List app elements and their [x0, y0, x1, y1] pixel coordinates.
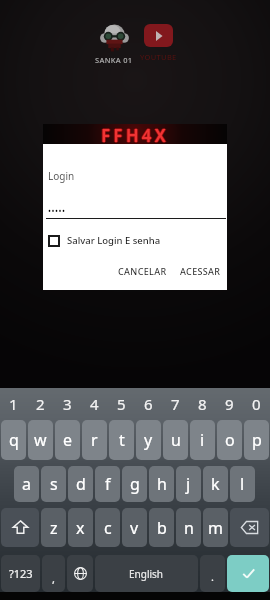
staticText: .	[211, 569, 214, 584]
staticText: 1	[9, 394, 18, 414]
staticText: i	[200, 429, 205, 451]
staticText: 8	[198, 394, 207, 414]
staticText: y	[144, 429, 153, 451]
staticText: w	[34, 429, 47, 451]
button[interactable]: 3	[54, 388, 81, 420]
button[interactable]: ACESSAR	[175, 261, 226, 281]
staticText: 3	[63, 394, 72, 414]
button[interactable]: l	[230, 466, 255, 502]
staticText: g	[130, 473, 140, 495]
button[interactable]: Backspace	[230, 508, 269, 547]
button[interactable]: d	[68, 466, 93, 502]
button[interactable]: 4	[81, 388, 108, 420]
staticText: m	[208, 517, 223, 539]
button[interactable]: YouTube	[133, 24, 183, 62]
button[interactable]: SANKA 01	[88, 24, 140, 65]
staticText: CANCELAR	[118, 265, 167, 277]
button[interactable]: t	[109, 420, 134, 460]
button[interactable]: CANCELAR	[113, 261, 172, 281]
button[interactable]: g	[122, 466, 147, 502]
button[interactable]: 1	[0, 388, 27, 420]
staticText: n	[184, 517, 194, 539]
button[interactable]: u	[163, 420, 188, 460]
staticText: FFH4X	[102, 124, 170, 144]
staticText: ACESSAR	[180, 265, 221, 277]
staticText: b	[157, 517, 167, 539]
staticText: Login	[48, 169, 75, 183]
button[interactable]: 5	[108, 388, 135, 420]
other: SANKA 01	[99, 24, 130, 52]
button[interactable]: s	[41, 466, 66, 502]
button[interactable]: a	[14, 466, 39, 502]
staticText: 5	[117, 394, 126, 414]
staticText: f	[105, 473, 111, 495]
staticText: v	[130, 517, 139, 539]
button[interactable]: 8	[189, 388, 216, 420]
button[interactable]: English	[95, 555, 198, 592]
staticText: ?123	[9, 566, 33, 581]
staticText: 6	[144, 394, 153, 414]
staticText: c	[104, 517, 112, 539]
button[interactable]: p	[244, 420, 269, 460]
button[interactable]: h	[149, 466, 174, 502]
staticText: 0	[252, 394, 261, 414]
staticText: FFH4X	[101, 125, 169, 145]
button[interactable]: 0	[243, 388, 270, 420]
staticText: 4	[90, 394, 99, 414]
staticText: FFH4X	[101, 124, 169, 144]
staticText: r	[91, 429, 98, 451]
button[interactable]: q	[1, 420, 26, 460]
button[interactable]: j	[176, 466, 201, 502]
staticText: q	[9, 429, 19, 451]
button[interactable]: z	[41, 508, 66, 547]
button[interactable]: 2	[27, 388, 54, 420]
staticText: 9	[225, 394, 234, 414]
staticText: p	[252, 429, 262, 451]
button[interactable]: Enter	[227, 555, 269, 592]
staticText: YOUTUBE	[140, 52, 177, 62]
other: YouTube	[144, 24, 173, 47]
staticText: SANKA 01	[95, 55, 133, 65]
button[interactable]: Shift	[1, 508, 39, 547]
staticText: h	[157, 473, 167, 495]
button[interactable]: i	[190, 420, 215, 460]
button[interactable]: m	[203, 508, 228, 547]
staticText: l	[240, 473, 245, 495]
button[interactable]: n	[176, 508, 201, 547]
staticText: d	[76, 473, 86, 495]
button[interactable]: o	[217, 420, 242, 460]
button[interactable]: k	[203, 466, 228, 502]
staticText: English	[129, 567, 164, 581]
button[interactable]: Language	[67, 555, 93, 592]
staticText: x	[76, 517, 85, 539]
staticText: ,	[52, 571, 55, 586]
button[interactable]: Salvar Login E senha	[48, 234, 161, 247]
button[interactable]: x	[68, 508, 93, 547]
button[interactable]: Symbols	[1, 555, 40, 592]
button[interactable]: w	[28, 420, 53, 460]
button[interactable]: c	[95, 508, 120, 547]
staticText: u	[171, 429, 181, 451]
button[interactable]: r	[82, 420, 107, 460]
button[interactable]: b	[149, 508, 174, 547]
button[interactable]: 7	[162, 388, 189, 420]
button[interactable]: y	[136, 420, 161, 460]
staticText: j	[186, 473, 191, 495]
button[interactable]: Comma	[42, 555, 65, 592]
button[interactable]: f	[95, 466, 120, 502]
staticText: Salvar Login E senha	[67, 234, 161, 247]
button[interactable]: 9	[216, 388, 243, 420]
staticText: s	[50, 473, 58, 495]
staticText: •••••	[48, 205, 66, 216]
staticText: z	[50, 517, 58, 539]
staticText: a	[22, 473, 31, 495]
staticText: 2	[36, 394, 45, 414]
button[interactable]: Period	[200, 555, 225, 592]
staticText: 7	[171, 394, 180, 414]
button[interactable]: e	[55, 420, 80, 460]
button[interactable]: v	[122, 508, 147, 547]
staticText: FFH4X	[100, 124, 168, 144]
staticText: FFH4X	[101, 123, 169, 143]
button[interactable]: 6	[135, 388, 162, 420]
staticText: e	[63, 429, 73, 451]
